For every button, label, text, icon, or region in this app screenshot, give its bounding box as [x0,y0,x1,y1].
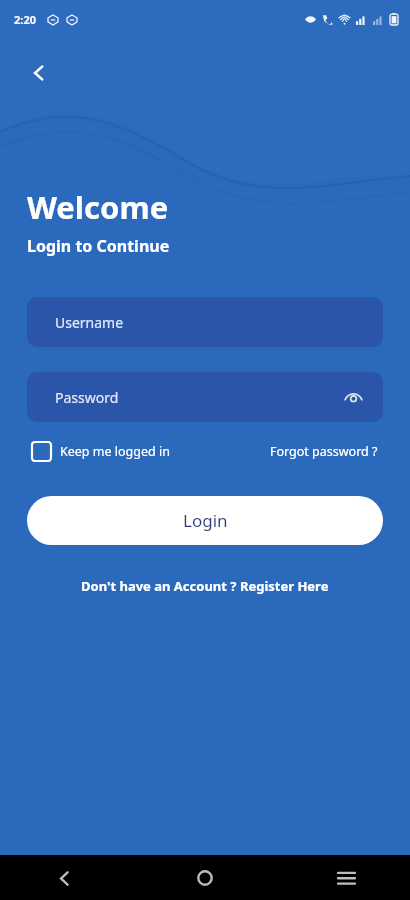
button[interactable]: Login [27,496,383,545]
button[interactable]: Home [183,856,227,900]
staticText: Don't have an Account ? Register Here [81,577,329,595]
staticText: Forgot password ? [270,443,378,460]
button[interactable]: Forgot password ? [268,441,380,462]
staticText: Welcome [27,186,169,228]
button[interactable]: Back [42,856,86,900]
staticText: Username [55,313,124,332]
staticText: Keep me logged in [60,443,170,460]
button[interactable]: Username [27,297,383,347]
button[interactable]: Don't have an Account ? Register Here [77,573,333,599]
staticText: Login [183,509,228,532]
button[interactable]: Password [27,372,383,422]
button[interactable]: Recent apps [324,856,368,900]
button[interactable]: Back [18,52,60,94]
staticText: Login to Continue [27,235,170,257]
button[interactable]: Keep me logged in [30,440,172,463]
staticText: 2:20 [14,12,36,27]
staticText: Password [55,388,119,407]
button[interactable]: Show password [339,383,367,411]
